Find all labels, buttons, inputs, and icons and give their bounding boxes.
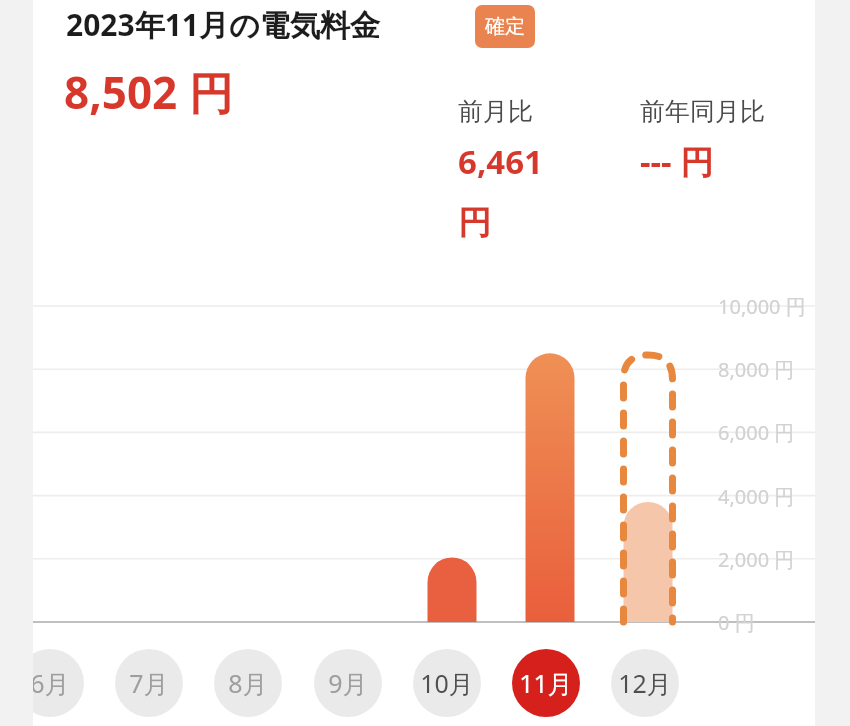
staticText: 2,000 円	[718, 546, 795, 573]
button[interactable]: 9月	[314, 649, 382, 717]
staticText: 確定	[485, 14, 525, 39]
staticText: 9月	[328, 666, 368, 700]
staticText: 2023年11月の電気料金	[66, 4, 380, 45]
staticText: 前月比	[458, 96, 533, 127]
button[interactable]: 12月	[611, 649, 679, 717]
button[interactable]: 確定	[475, 5, 535, 48]
staticText: 4,000 円	[718, 483, 795, 510]
staticText: 8,502 円	[64, 62, 233, 122]
staticText: 7月	[129, 666, 169, 700]
staticText: 6月	[30, 666, 70, 700]
staticText: 0 円	[718, 609, 755, 636]
staticText: 10月	[420, 666, 474, 700]
staticText: 前年同月比	[640, 96, 765, 127]
staticText: --- 円	[640, 139, 714, 184]
staticText: 8,000 円	[718, 356, 795, 383]
button[interactable]: 6月	[16, 649, 84, 717]
button[interactable]: 7月	[115, 649, 183, 717]
staticText: 6,461 円	[458, 139, 543, 244]
staticText: 6,000 円	[718, 419, 795, 446]
staticText: 12月	[618, 666, 672, 700]
staticText: 11月	[519, 666, 573, 700]
staticText: 8月	[228, 666, 268, 700]
button[interactable]: 11月	[512, 649, 580, 717]
button[interactable]: 10月	[413, 649, 481, 717]
button[interactable]: 8月	[214, 649, 282, 717]
staticText: 10,000 円	[718, 293, 806, 320]
